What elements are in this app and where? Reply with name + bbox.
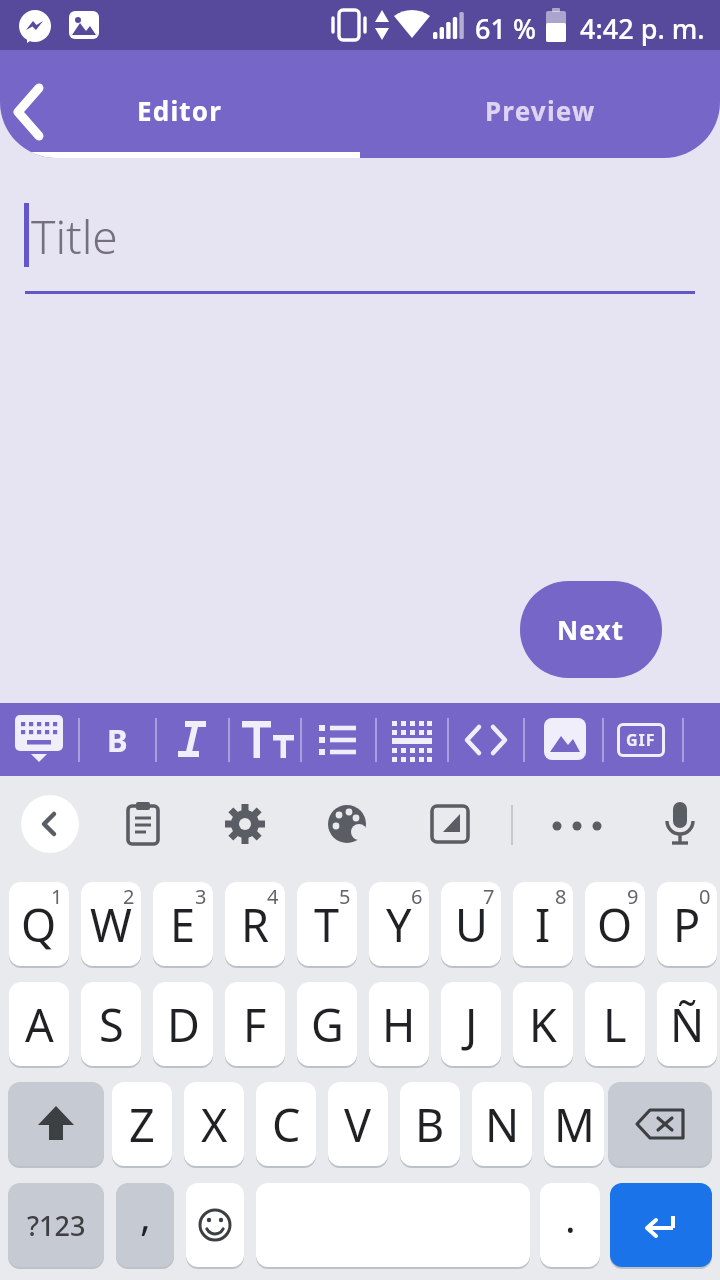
staticText: B <box>415 1094 445 1155</box>
button[interactable] <box>168 717 216 763</box>
staticText: Q <box>21 894 57 955</box>
button[interactable]: X <box>184 1082 244 1166</box>
staticText: W <box>90 894 132 955</box>
button[interactable]: D <box>153 982 213 1066</box>
button[interactable]: , <box>116 1183 174 1267</box>
staticText: 4 <box>267 883 279 910</box>
staticText: 6 <box>411 883 423 910</box>
staticText: Preview <box>485 93 596 128</box>
button[interactable]: N <box>472 1082 532 1166</box>
staticText: O <box>597 894 633 955</box>
staticText: B <box>107 719 128 761</box>
button[interactable]: U <box>441 882 501 966</box>
staticText: T <box>314 894 340 955</box>
button[interactable] <box>549 802 605 846</box>
button[interactable]: Y <box>369 882 429 966</box>
button[interactable] <box>463 719 509 761</box>
staticText: Z <box>129 1094 155 1155</box>
staticText: U <box>455 894 488 955</box>
button[interactable] <box>240 715 296 763</box>
staticText: 61 % <box>475 10 536 47</box>
button[interactable] <box>21 795 79 853</box>
button[interactable]: G <box>297 982 357 1066</box>
button[interactable]: A <box>9 982 69 1066</box>
staticText: S <box>99 994 124 1055</box>
button[interactable]: Q <box>9 882 69 966</box>
button[interactable]: Editor <box>0 64 360 156</box>
button[interactable]: E <box>153 882 213 966</box>
staticText: M <box>554 1094 595 1155</box>
staticText: 7 <box>483 883 495 910</box>
button[interactable]: L <box>585 982 645 1066</box>
staticText: J <box>465 994 478 1055</box>
button[interactable] <box>14 86 46 140</box>
staticText: E <box>170 894 196 955</box>
staticText: . <box>565 1190 576 1244</box>
staticText: L <box>603 994 627 1055</box>
button[interactable] <box>610 1183 712 1267</box>
button[interactable]: M <box>544 1082 604 1166</box>
staticText: ?123 <box>27 1207 86 1244</box>
button[interactable]: V <box>328 1082 388 1166</box>
staticText: GIF <box>626 729 656 751</box>
staticText: 8 <box>555 883 567 910</box>
staticText: V <box>344 1094 372 1155</box>
button[interactable] <box>121 802 165 846</box>
staticText: 4:42 p. m. <box>580 10 705 47</box>
staticText: D <box>167 994 200 1055</box>
button[interactable]: T <box>297 882 357 966</box>
button[interactable]: K <box>513 982 573 1066</box>
staticText: 3 <box>195 883 207 910</box>
staticText: 1 <box>51 883 63 910</box>
staticText: A <box>25 994 54 1055</box>
staticText: Next <box>557 612 625 647</box>
button[interactable]: Ñ <box>657 982 717 1066</box>
button[interactable]: Preview <box>360 64 720 156</box>
button[interactable]: Next <box>520 581 662 678</box>
button[interactable]: O <box>585 882 645 966</box>
staticText: C <box>272 1094 301 1155</box>
button[interactable]: C <box>256 1082 316 1166</box>
button[interactable]: B <box>400 1082 460 1166</box>
staticText: P <box>673 894 701 955</box>
staticText: N <box>485 1094 520 1155</box>
button[interactable]: W <box>81 882 141 966</box>
button[interactable]: S <box>81 982 141 1066</box>
button[interactable]: F <box>225 982 285 1066</box>
staticText: G <box>311 994 344 1055</box>
button[interactable] <box>544 718 586 760</box>
button[interactable] <box>325 802 369 846</box>
button[interactable]: GIF <box>617 723 665 757</box>
staticText: 2 <box>123 883 135 910</box>
staticText: Editor <box>137 93 223 128</box>
button[interactable] <box>390 717 434 763</box>
staticText: , <box>140 1188 151 1242</box>
button[interactable] <box>8 1082 104 1166</box>
button[interactable]: ?123 <box>8 1183 104 1267</box>
button[interactable] <box>658 800 702 848</box>
button[interactable]: I <box>513 882 573 966</box>
staticText: H <box>382 994 416 1055</box>
button[interactable] <box>186 1183 244 1267</box>
staticText: K <box>529 994 557 1055</box>
staticText: I <box>535 894 551 955</box>
staticText: Ñ <box>670 994 705 1055</box>
button[interactable]: R <box>225 882 285 966</box>
staticText: F <box>243 994 267 1055</box>
button[interactable] <box>8 709 70 771</box>
button[interactable] <box>315 717 361 763</box>
button[interactable] <box>428 802 472 846</box>
staticText: 0 <box>699 883 711 910</box>
staticText: X <box>201 1094 228 1155</box>
button[interactable]: H <box>369 982 429 1066</box>
button[interactable]: B <box>85 717 149 763</box>
staticText: Title <box>31 205 118 268</box>
button[interactable] <box>223 802 267 846</box>
button[interactable] <box>608 1082 712 1166</box>
button[interactable]: . <box>540 1183 600 1267</box>
button[interactable]: P <box>657 882 717 966</box>
staticText: Y <box>386 894 412 955</box>
button[interactable]: Z <box>112 1082 172 1166</box>
button[interactable]: J <box>441 982 501 1066</box>
